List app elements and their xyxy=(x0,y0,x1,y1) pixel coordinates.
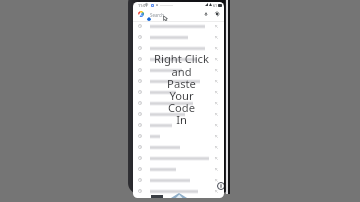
button[interactable] xyxy=(133,164,224,175)
button[interactable] xyxy=(133,142,224,153)
button[interactable] xyxy=(133,43,224,54)
button[interactable] xyxy=(133,109,224,120)
button[interactable] xyxy=(133,54,224,65)
button[interactable] xyxy=(133,186,224,197)
staticText: 11:01 xyxy=(138,3,148,8)
button[interactable] xyxy=(133,98,224,109)
button[interactable]: Search xyxy=(133,8,224,20)
button[interactable] xyxy=(133,76,224,87)
staticText: 61 xyxy=(213,3,218,8)
button[interactable] xyxy=(133,32,224,43)
button[interactable] xyxy=(133,175,224,186)
button[interactable] xyxy=(133,120,224,131)
button[interactable] xyxy=(133,65,224,76)
button[interactable] xyxy=(133,87,224,98)
button[interactable] xyxy=(133,131,224,142)
button[interactable]: Google Lens xyxy=(214,11,220,17)
staticText: Right Click and Paste Your Code In xyxy=(136,51,224,127)
staticText: Search xyxy=(150,12,164,18)
button[interactable] xyxy=(133,153,224,164)
button[interactable] xyxy=(133,21,224,32)
button[interactable]: Voice search xyxy=(203,11,209,17)
